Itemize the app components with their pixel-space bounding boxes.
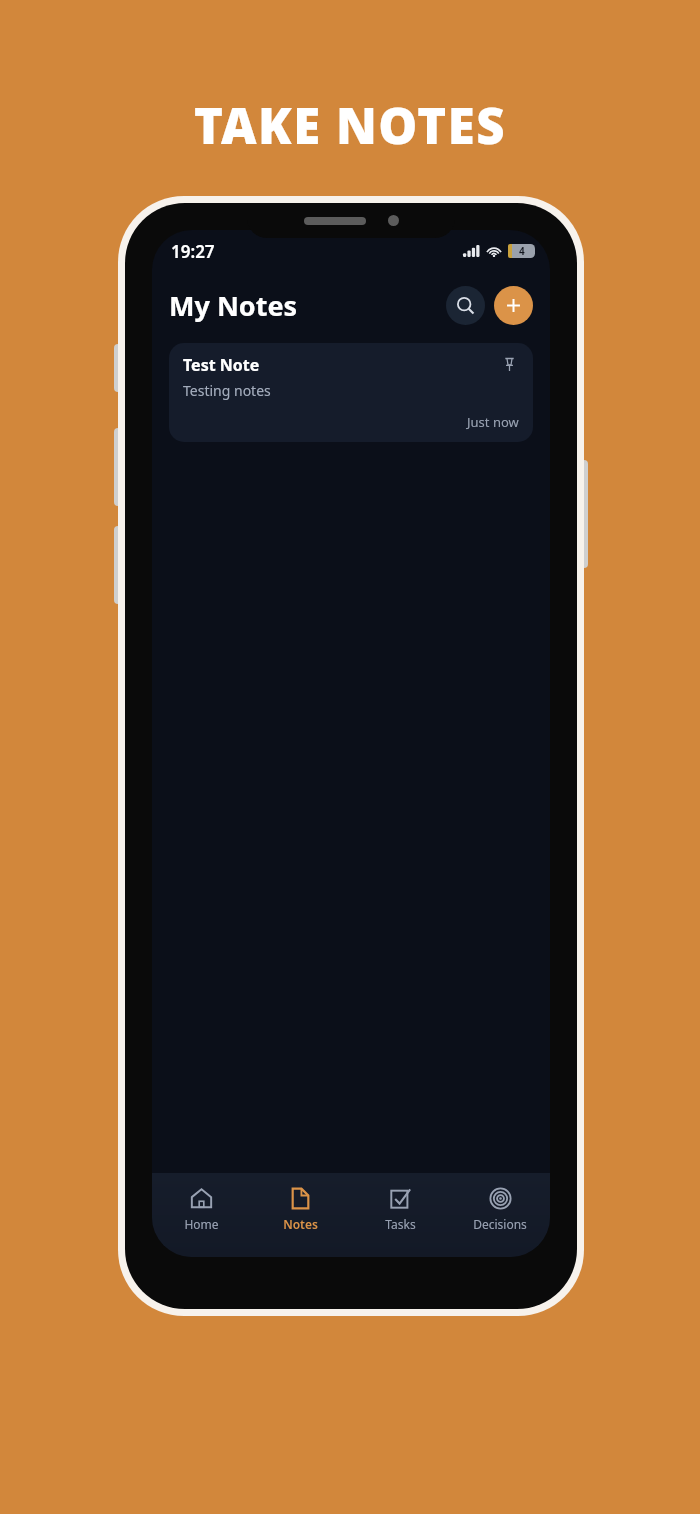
staticText: 19:27 xyxy=(171,240,215,263)
button[interactable]: Home xyxy=(152,1185,251,1234)
staticText: Testing notes xyxy=(183,381,271,400)
staticText: 4 xyxy=(519,244,525,258)
button[interactable]: Pin note xyxy=(499,354,519,374)
staticText: My Notes xyxy=(169,287,298,324)
staticText: Just now xyxy=(467,413,519,431)
button[interactable]: Decisions xyxy=(450,1185,550,1234)
button[interactable]: Tasks xyxy=(350,1185,450,1234)
staticText: TAKE NOTES xyxy=(194,92,506,159)
staticText: Test Note xyxy=(183,354,260,376)
staticText: Tasks xyxy=(385,1216,416,1232)
button[interactable]: Test Note xyxy=(169,343,533,442)
button[interactable]: Add note xyxy=(494,286,533,325)
staticText: Decisions xyxy=(473,1216,527,1232)
staticText: Notes xyxy=(283,1216,318,1232)
button[interactable]: Notes xyxy=(251,1185,350,1234)
staticText: Home xyxy=(184,1216,219,1232)
button[interactable]: Search xyxy=(446,286,485,325)
